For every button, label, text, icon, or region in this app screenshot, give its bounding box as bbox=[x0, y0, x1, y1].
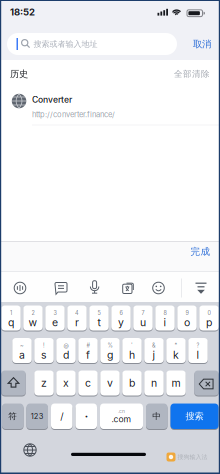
button[interactable]: 中 bbox=[146, 403, 167, 429]
staticText: 1 bbox=[10, 310, 12, 316]
staticText: 历史 bbox=[10, 68, 28, 80]
staticText: 9 bbox=[185, 310, 188, 316]
staticText: t bbox=[97, 316, 100, 329]
staticText: 完成 bbox=[190, 246, 210, 257]
button[interactable]: 0 bbox=[199, 305, 219, 330]
staticText: b bbox=[129, 377, 135, 389]
button[interactable]: b bbox=[122, 370, 142, 395]
staticText: n bbox=[151, 377, 157, 389]
button[interactable]: ~ bbox=[12, 338, 32, 363]
button[interactable]: 删除 bbox=[194, 370, 219, 395]
button[interactable]: • bbox=[75, 403, 97, 429]
button[interactable]: * bbox=[166, 338, 186, 363]
button[interactable]: ' bbox=[122, 338, 142, 363]
button[interactable]: & bbox=[144, 338, 164, 363]
button[interactable]: n bbox=[144, 370, 164, 395]
button[interactable]: x bbox=[56, 370, 76, 395]
button[interactable]: 完成 bbox=[0, 0, 200, 16]
button[interactable]: 3 bbox=[45, 305, 65, 330]
staticText: y bbox=[118, 316, 124, 329]
button[interactable]: v bbox=[100, 370, 120, 395]
button[interactable]: 语音输入 bbox=[0, 0, 220, 474]
staticText: 符 bbox=[8, 411, 17, 421]
staticText: .com bbox=[111, 414, 131, 424]
staticText: z bbox=[41, 377, 47, 389]
staticText: d bbox=[63, 349, 69, 361]
staticText: e bbox=[52, 316, 58, 329]
staticText: # bbox=[86, 342, 89, 349]
button[interactable]: 输入法 bbox=[0, 0, 220, 474]
staticText: / bbox=[60, 411, 63, 422]
staticText: v bbox=[107, 377, 113, 389]
button[interactable]: 全部清除 bbox=[0, 0, 200, 16]
button[interactable]: ? bbox=[188, 338, 208, 363]
button[interactable]: 搜索 bbox=[170, 403, 218, 429]
button[interactable]: / bbox=[51, 403, 72, 429]
staticText: l bbox=[196, 349, 199, 361]
button[interactable]: % bbox=[100, 338, 120, 363]
button[interactable]: 6 bbox=[111, 305, 131, 330]
staticText: s bbox=[41, 349, 47, 361]
button[interactable]: z bbox=[34, 370, 54, 395]
staticText: j bbox=[152, 349, 155, 361]
button[interactable]: 符 bbox=[2, 403, 23, 429]
staticText: 取消 bbox=[193, 38, 211, 50]
staticText: 搜狗输入法 bbox=[177, 453, 207, 461]
staticText: p bbox=[206, 316, 212, 329]
button[interactable]: 8 bbox=[155, 305, 175, 330]
button[interactable]: 4 bbox=[67, 305, 87, 330]
button[interactable]: m bbox=[166, 370, 186, 395]
staticText: q bbox=[8, 316, 14, 329]
staticText: 搜索或者输入地址 bbox=[33, 39, 97, 49]
staticText: a bbox=[19, 349, 25, 361]
button[interactable]: 7 bbox=[133, 305, 153, 330]
button[interactable]: 5 bbox=[89, 305, 109, 330]
staticText: • bbox=[85, 413, 88, 420]
staticText: f bbox=[86, 349, 90, 361]
button[interactable]: 9 bbox=[177, 305, 197, 330]
staticText: ! bbox=[43, 342, 45, 349]
staticText: o bbox=[184, 316, 190, 329]
staticText: & bbox=[152, 342, 156, 349]
staticText: 18:52 bbox=[10, 6, 35, 18]
staticText: 中 bbox=[152, 411, 161, 421]
staticText: u bbox=[140, 316, 146, 329]
staticText: .cn bbox=[118, 408, 125, 414]
staticText: ~ bbox=[20, 342, 24, 349]
staticText: w bbox=[28, 316, 37, 329]
button[interactable]: @ bbox=[56, 338, 76, 363]
staticText: 8 bbox=[163, 310, 166, 316]
staticText: 2 bbox=[31, 310, 34, 316]
staticText: k bbox=[173, 349, 179, 361]
button[interactable]: .cn bbox=[100, 403, 143, 429]
staticText: http://converter.finance/ bbox=[32, 110, 115, 119]
button[interactable]: 123 bbox=[26, 403, 48, 429]
button[interactable]: 语音消息 bbox=[0, 0, 220, 474]
button[interactable]: 2 bbox=[23, 305, 43, 330]
staticText: g bbox=[107, 349, 113, 361]
staticText: ' bbox=[131, 342, 133, 349]
button[interactable]: Shift bbox=[1, 370, 26, 395]
button[interactable]: c bbox=[78, 370, 98, 395]
staticText: x bbox=[63, 377, 69, 389]
staticText: 4 bbox=[75, 310, 79, 316]
staticText: 6 bbox=[119, 310, 122, 316]
button[interactable]: ! bbox=[34, 338, 54, 363]
button[interactable]: 快捷翻译 bbox=[0, 0, 220, 474]
staticText: r bbox=[75, 316, 79, 329]
staticText: % bbox=[107, 342, 112, 349]
button[interactable]: # bbox=[78, 338, 98, 363]
staticText: @ bbox=[63, 342, 68, 349]
button[interactable]: 1 bbox=[1, 305, 21, 330]
button[interactable]: 取消 bbox=[0, 0, 200, 16]
staticText: 7 bbox=[141, 310, 144, 316]
button[interactable]: 切换键盘 bbox=[0, 0, 220, 474]
staticText: * bbox=[174, 342, 177, 349]
button[interactable]: 表情 bbox=[0, 0, 220, 474]
staticText: 123 bbox=[31, 412, 44, 421]
staticText: Converter bbox=[32, 94, 72, 104]
staticText: 5 bbox=[97, 310, 100, 316]
button[interactable]: Converter bbox=[0, 0, 220, 474]
staticText: i bbox=[163, 316, 166, 329]
button[interactable]: 收起键盘 bbox=[0, 0, 220, 474]
